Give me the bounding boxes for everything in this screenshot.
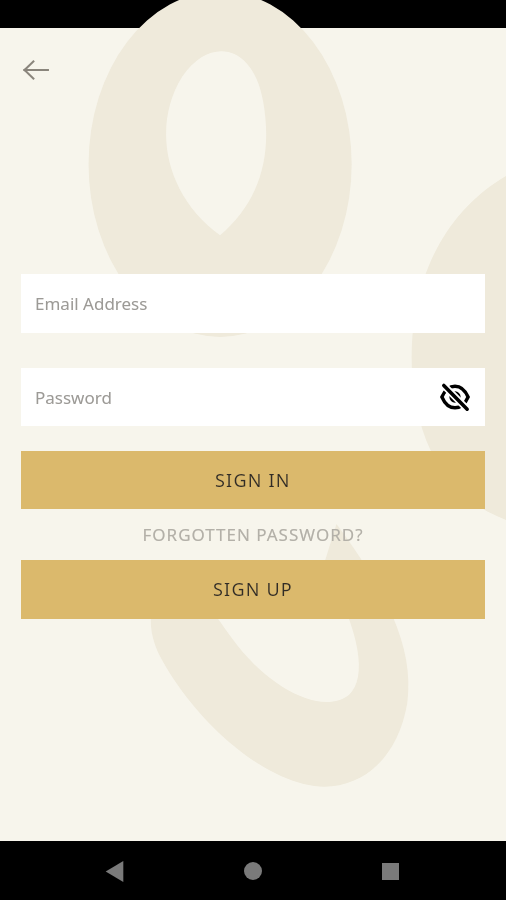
button[interactable]: SIGN IN [21,451,485,509]
button[interactable]: Email Address [21,274,485,333]
staticText: FORGOTTEN PASSWORD? [142,523,364,546]
button[interactable]: FORGOTTEN PASSWORD? [21,509,485,560]
staticText: SIGN UP [213,577,293,602]
button[interactable]: Back [90,847,138,895]
button[interactable]: SIGN UP [21,560,485,619]
button[interactable]: Recent apps [366,847,414,895]
button[interactable]: Back [8,42,64,98]
staticText: Password [35,386,112,409]
staticText: Email Address [35,292,148,315]
button[interactable]: Show password [433,375,477,419]
staticText: SIGN IN [215,468,291,493]
button[interactable]: Password [21,368,485,426]
button[interactable]: Home [229,847,277,895]
